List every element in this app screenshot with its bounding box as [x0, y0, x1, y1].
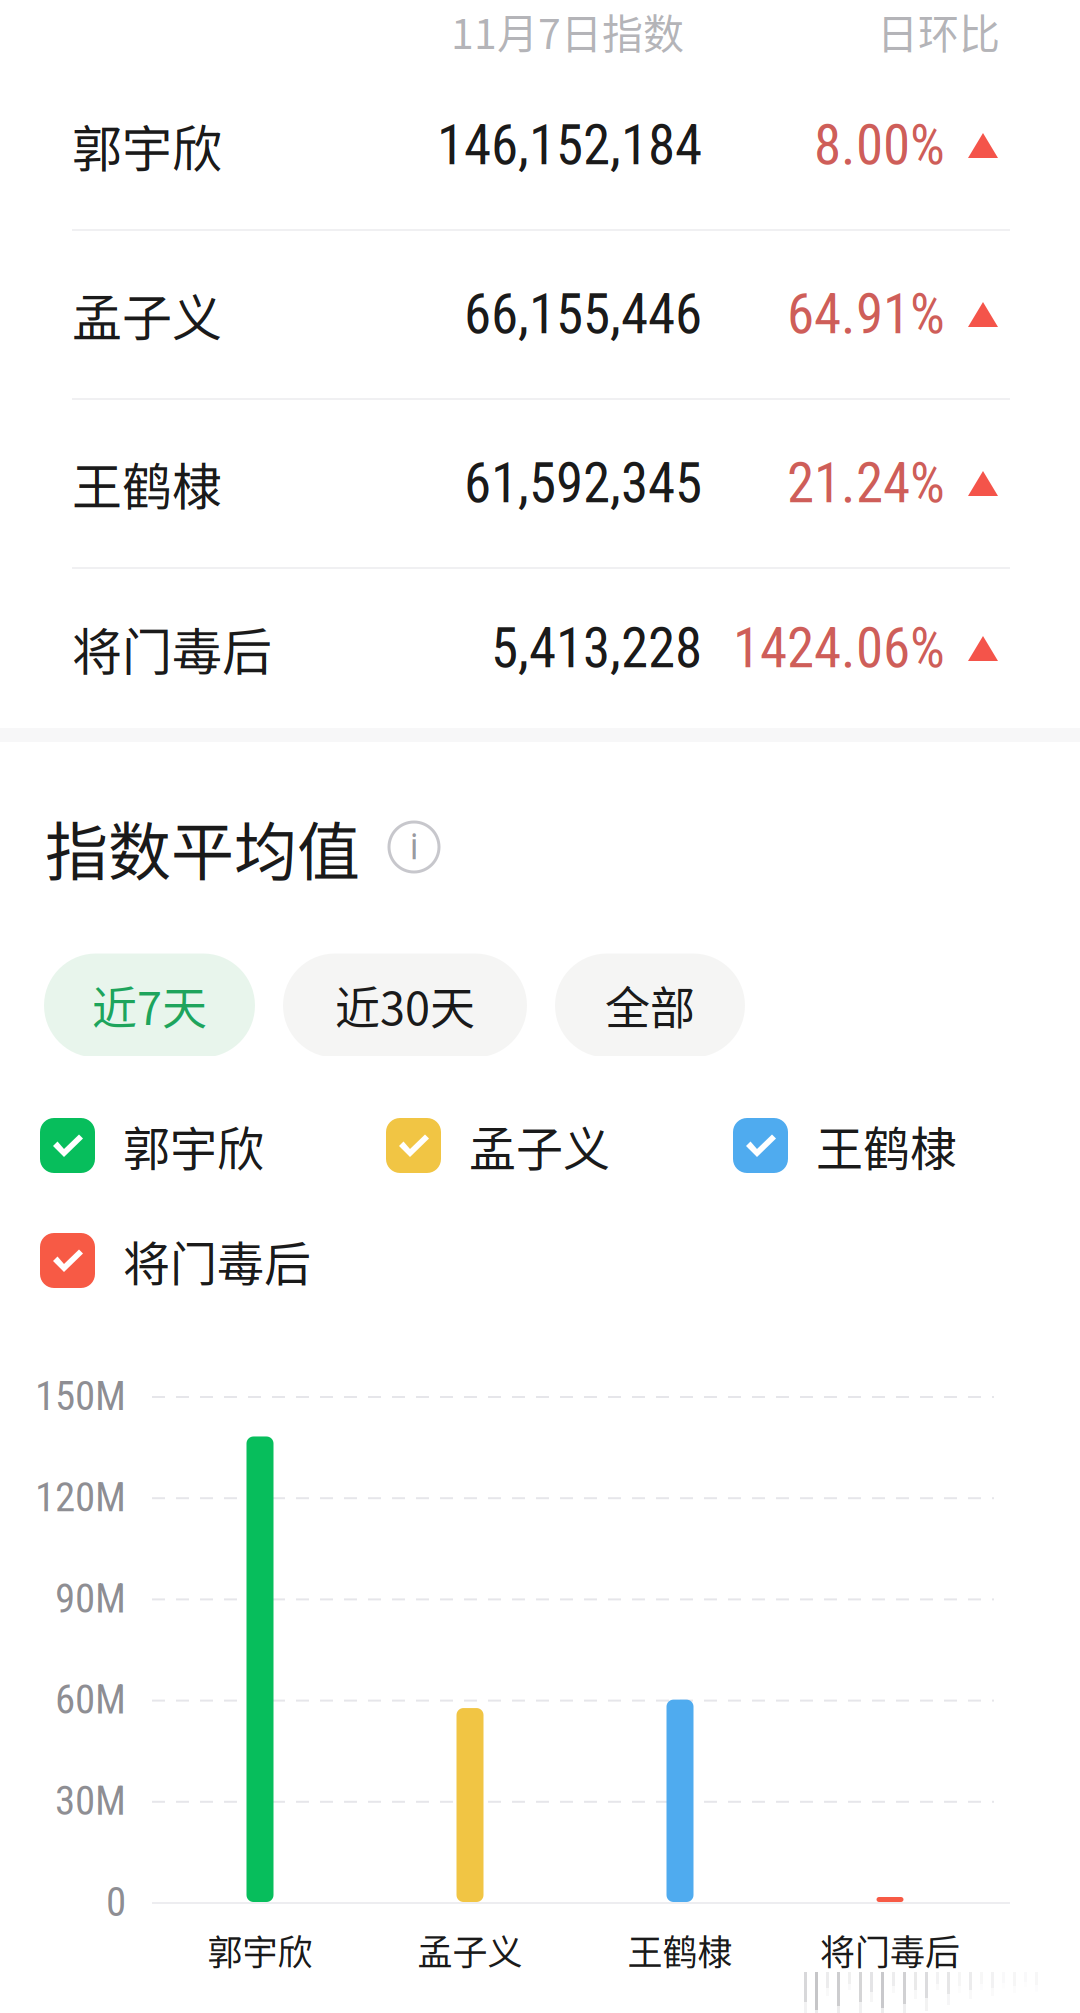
staticText: 150M [35, 1372, 126, 1420]
button[interactable]: 王鹤棣 [733, 1111, 957, 1180]
staticText: 指数平均值 [45, 801, 360, 893]
staticText: 近30天 [335, 973, 475, 1038]
staticText: 王鹤棣 [627, 1925, 732, 1975]
staticText: 1424.06% [733, 616, 945, 681]
staticText: 60M [55, 1676, 126, 1724]
button[interactable]: 孟子义 [386, 1111, 610, 1180]
button[interactable]: 郭宇欣 [40, 1111, 264, 1180]
staticText: 30M [55, 1777, 126, 1825]
button[interactable]: 将门毒后 [40, 1226, 311, 1295]
button[interactable]: 孟子义 [0, 231, 1080, 398]
staticText: 将门毒后 [820, 1925, 960, 1975]
staticText: 王鹤棣 [72, 447, 222, 520]
staticText: 146,152,184 [437, 113, 702, 178]
staticText: 0 [106, 1878, 126, 1926]
staticText: 8.00% [814, 113, 945, 178]
staticText: 孟子义 [469, 1111, 610, 1180]
staticText: 66,155,446 [464, 282, 702, 347]
staticText: 64.91% [787, 282, 945, 347]
staticText: 11月7日指数 [451, 1, 684, 61]
staticText: 120M [35, 1473, 126, 1521]
staticText: 61,592,345 [464, 451, 702, 516]
staticText: 郭宇欣 [123, 1111, 264, 1180]
staticText: 孟子义 [72, 278, 222, 351]
button[interactable]: 王鹤棣 [0, 400, 1080, 567]
staticText: 21.24% [787, 451, 945, 516]
button[interactable]: 近7天 [44, 953, 255, 1057]
staticText: 5,413,228 [491, 616, 702, 681]
staticText: 郭宇欣 [72, 109, 222, 182]
staticText: 全部 [605, 973, 695, 1038]
staticText: 王鹤棣 [816, 1111, 957, 1180]
button[interactable]: 将门毒后 [0, 565, 1080, 732]
staticText: 近7天 [92, 973, 207, 1038]
staticText: i [410, 826, 418, 868]
staticText: 日环比 [877, 1, 1000, 61]
staticText: 将门毒后 [72, 612, 272, 685]
button[interactable]: 全部 [555, 953, 745, 1057]
button[interactable]: 近30天 [283, 953, 527, 1057]
staticText: 孟子义 [417, 1925, 522, 1975]
button[interactable]: 郭宇欣 [0, 62, 1080, 229]
staticText: 郭宇欣 [207, 1925, 312, 1975]
staticText: 90M [55, 1574, 126, 1622]
button[interactable]: 指数平均值说明 [386, 819, 442, 875]
staticText: 将门毒后 [123, 1226, 311, 1295]
